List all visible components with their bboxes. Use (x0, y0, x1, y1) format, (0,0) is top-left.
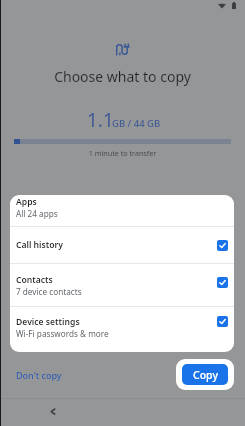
staticText: Device settings (16, 316, 80, 328)
staticText: Don't copy (16, 369, 62, 381)
staticText: All 24 apps (16, 208, 58, 219)
staticText: Copy (193, 368, 218, 382)
button[interactable]: Call history (10, 227, 234, 263)
staticText: Wi-Fi passwords & more (16, 328, 109, 339)
staticText: 7 device contacts (16, 286, 82, 297)
staticText: Apps (16, 196, 37, 208)
button[interactable]: Apps (10, 195, 234, 226)
staticText: Call history (16, 239, 63, 251)
button[interactable]: Device settings (10, 307, 234, 347)
button[interactable]: Copy (182, 364, 228, 385)
staticText: Contacts (16, 274, 53, 286)
button[interactable]: Back (44, 404, 63, 423)
staticText: 1 minute to transfer (0, 148, 245, 158)
staticText: GB / 44 GB (112, 117, 161, 130)
staticText: Choose what to copy (0, 67, 245, 86)
button[interactable]: Contacts (10, 264, 234, 306)
staticText: 1.1 (87, 107, 114, 133)
button[interactable]: Don't copy (11, 365, 67, 385)
